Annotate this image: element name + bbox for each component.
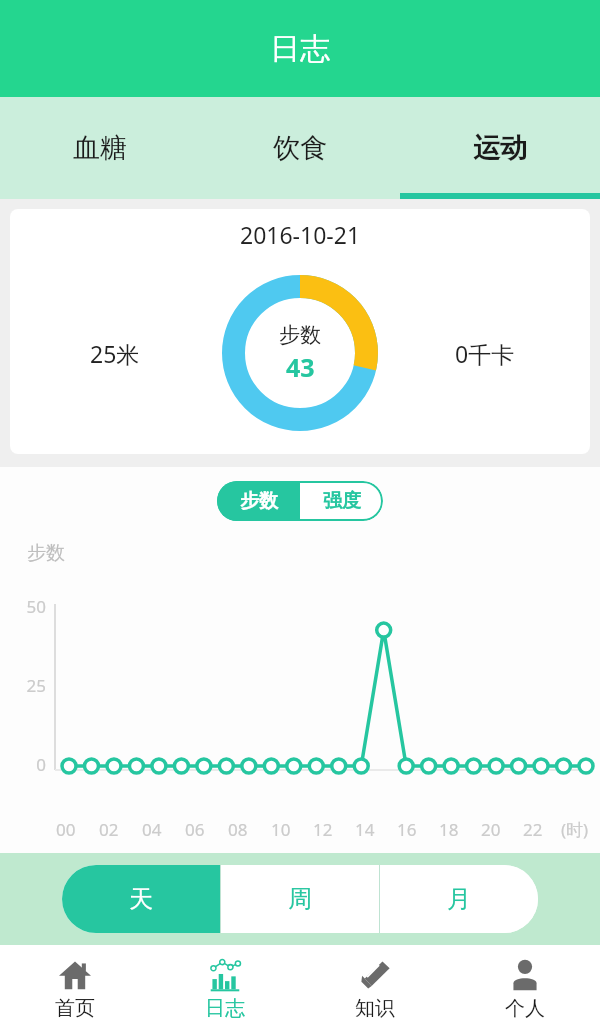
staticText: 25米 bbox=[90, 338, 140, 369]
staticText: 日志 bbox=[270, 30, 330, 68]
staticText: 强度 bbox=[323, 489, 361, 513]
button[interactable]: 血糖 bbox=[0, 97, 200, 199]
staticText: 00 bbox=[56, 818, 76, 841]
staticText: 02 bbox=[99, 818, 119, 841]
staticText: 知识 bbox=[355, 996, 395, 1021]
button[interactable]: 知识 bbox=[300, 945, 450, 1033]
staticText: 2016-10-21 bbox=[240, 219, 361, 250]
button[interactable]: 周 bbox=[221, 865, 379, 933]
staticText: 20 bbox=[481, 818, 501, 841]
staticText: 天 bbox=[129, 884, 153, 914]
button[interactable]: 日志 bbox=[150, 945, 300, 1033]
staticText: 血糖 bbox=[73, 131, 127, 165]
button[interactable]: 首页 bbox=[0, 945, 150, 1033]
staticText: 运动 bbox=[473, 131, 527, 165]
staticText: 步数 bbox=[240, 489, 278, 513]
staticText: 22 bbox=[523, 818, 543, 841]
staticText: 50 bbox=[0, 595, 46, 618]
staticText: 个人 bbox=[505, 996, 545, 1021]
button[interactable]: 天 bbox=[62, 865, 220, 933]
staticText: 月 bbox=[447, 884, 471, 914]
staticText: 饮食 bbox=[273, 131, 327, 165]
button[interactable]: 2016-10-21 bbox=[10, 209, 590, 454]
staticText: 16 bbox=[397, 818, 417, 841]
staticText: 08 bbox=[228, 818, 248, 841]
button[interactable]: 个人 bbox=[450, 945, 600, 1033]
button[interactable]: 饮食 bbox=[200, 97, 400, 199]
staticText: 14 bbox=[355, 818, 375, 841]
staticText: 04 bbox=[142, 818, 162, 841]
staticText: 10 bbox=[271, 818, 291, 841]
staticText: 12 bbox=[313, 818, 333, 841]
staticText: 0 bbox=[0, 753, 46, 776]
button[interactable]: 月 bbox=[380, 865, 538, 933]
staticText: 步数 bbox=[27, 541, 65, 565]
button[interactable]: 运动 bbox=[400, 97, 600, 199]
staticText: 0千卡 bbox=[455, 338, 515, 369]
staticText: 日志 bbox=[205, 996, 245, 1021]
staticText: 25 bbox=[0, 674, 46, 697]
staticText: (时) bbox=[561, 818, 589, 841]
staticText: 首页 bbox=[55, 996, 95, 1021]
staticText: 周 bbox=[288, 884, 312, 914]
staticText: 18 bbox=[439, 818, 459, 841]
staticText: 43 bbox=[286, 350, 315, 384]
staticText: 06 bbox=[185, 818, 205, 841]
button[interactable]: 强度 bbox=[300, 481, 383, 521]
staticText: 步数 bbox=[279, 322, 321, 348]
button[interactable]: 步数 bbox=[217, 481, 300, 521]
